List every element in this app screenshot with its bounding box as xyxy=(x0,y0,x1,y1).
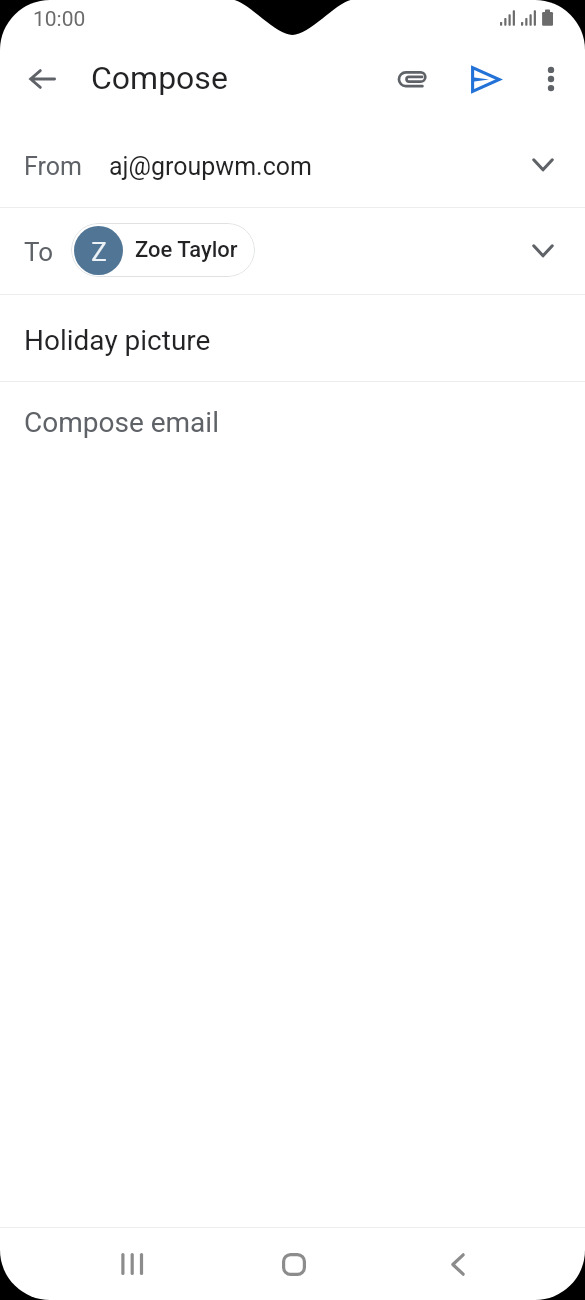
button[interactable]: From xyxy=(0,115,585,207)
button[interactable]: Z xyxy=(71,223,255,277)
staticText: Z xyxy=(91,237,107,267)
staticText: Compose xyxy=(91,59,228,97)
staticText: aj@groupwm.com xyxy=(109,152,312,181)
button[interactable]: More options xyxy=(526,54,576,104)
staticText: Zoe Taylor xyxy=(135,237,238,263)
staticText: Holiday picture xyxy=(24,324,211,357)
button[interactable]: Home xyxy=(259,1229,329,1299)
button[interactable]: Expand xyxy=(518,140,568,190)
button[interactable]: To xyxy=(0,208,585,294)
staticText: From xyxy=(24,152,82,181)
staticText: 10:00 xyxy=(33,7,86,32)
button[interactable]: Send xyxy=(461,54,511,104)
staticText: Compose email xyxy=(24,406,219,439)
button[interactable]: Holiday picture xyxy=(0,295,585,381)
button[interactable]: Expand xyxy=(518,226,568,276)
button[interactable]: Back xyxy=(423,1229,493,1299)
staticText: To xyxy=(24,237,54,267)
button[interactable]: Compose email xyxy=(0,382,585,1227)
button[interactable]: Recent apps xyxy=(96,1229,166,1299)
button[interactable]: Attach file xyxy=(388,54,438,104)
button[interactable]: Back xyxy=(17,54,67,104)
